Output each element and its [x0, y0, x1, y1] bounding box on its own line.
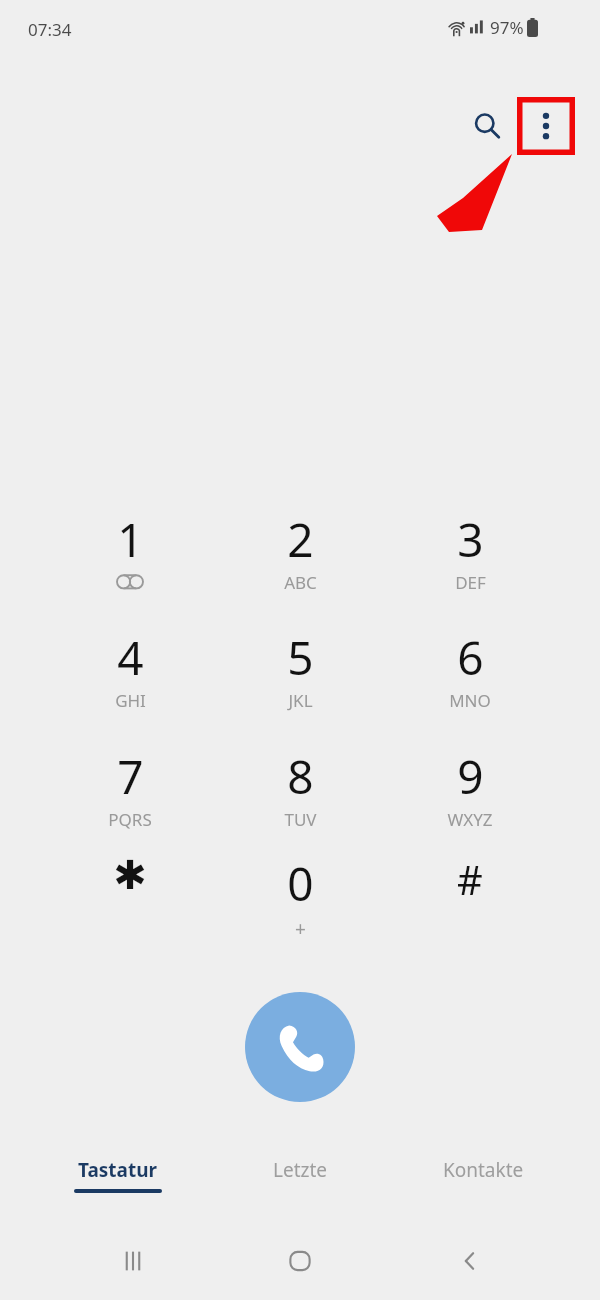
button[interactable]: 0: [235, 852, 365, 964]
button[interactable]: 2: [235, 508, 365, 620]
button[interactable]: #: [405, 852, 535, 964]
staticText: DEF: [455, 571, 486, 594]
button[interactable]: Back: [438, 1232, 502, 1290]
staticText: 1: [117, 508, 144, 571]
staticText: WXYZ: [447, 808, 493, 831]
button[interactable]: ✱: [65, 852, 195, 964]
staticText: 8: [287, 745, 314, 808]
button[interactable]: 9: [405, 745, 535, 857]
staticText: TUV: [284, 808, 317, 831]
staticText: 6: [457, 626, 484, 689]
button[interactable]: 5: [235, 626, 365, 738]
staticText: 0: [287, 852, 314, 915]
staticText: Kontakte: [443, 1157, 524, 1183]
staticText: 5: [287, 626, 314, 689]
button[interactable]: 6: [405, 626, 535, 738]
button[interactable]: Call: [245, 992, 355, 1102]
staticText: 3: [457, 508, 484, 571]
staticText: Letzte: [273, 1157, 328, 1183]
button[interactable]: Letzte: [215, 1148, 385, 1204]
staticText: 9: [457, 745, 484, 808]
staticText: +: [295, 916, 306, 942]
button[interactable]: 1: [65, 508, 195, 620]
staticText: ✱: [113, 852, 147, 899]
staticText: JKL: [288, 689, 313, 712]
staticText: ABC: [284, 571, 317, 594]
button[interactable]: 7: [65, 745, 195, 857]
button[interactable]: 8: [235, 745, 365, 857]
staticText: 97%: [490, 16, 524, 39]
staticText: 07:34: [28, 18, 72, 41]
staticText: GHI: [115, 689, 146, 712]
button[interactable]: Kontakte: [398, 1148, 568, 1204]
button[interactable]: Home: [268, 1232, 332, 1290]
button[interactable]: Tastatur: [33, 1148, 203, 1204]
staticText: Tastatur: [78, 1157, 158, 1183]
button[interactable]: 3: [405, 508, 535, 620]
staticText: #: [457, 852, 483, 906]
button[interactable]: Recents: [101, 1232, 165, 1290]
staticText: 4: [117, 626, 144, 689]
button[interactable]: 4: [65, 626, 195, 738]
staticText: MNO: [449, 689, 491, 712]
staticText: 7: [117, 745, 144, 808]
button[interactable]: Search: [463, 102, 511, 150]
staticText: 2: [287, 508, 314, 571]
staticText: PQRS: [108, 808, 152, 831]
button[interactable]: More options: [517, 97, 575, 155]
